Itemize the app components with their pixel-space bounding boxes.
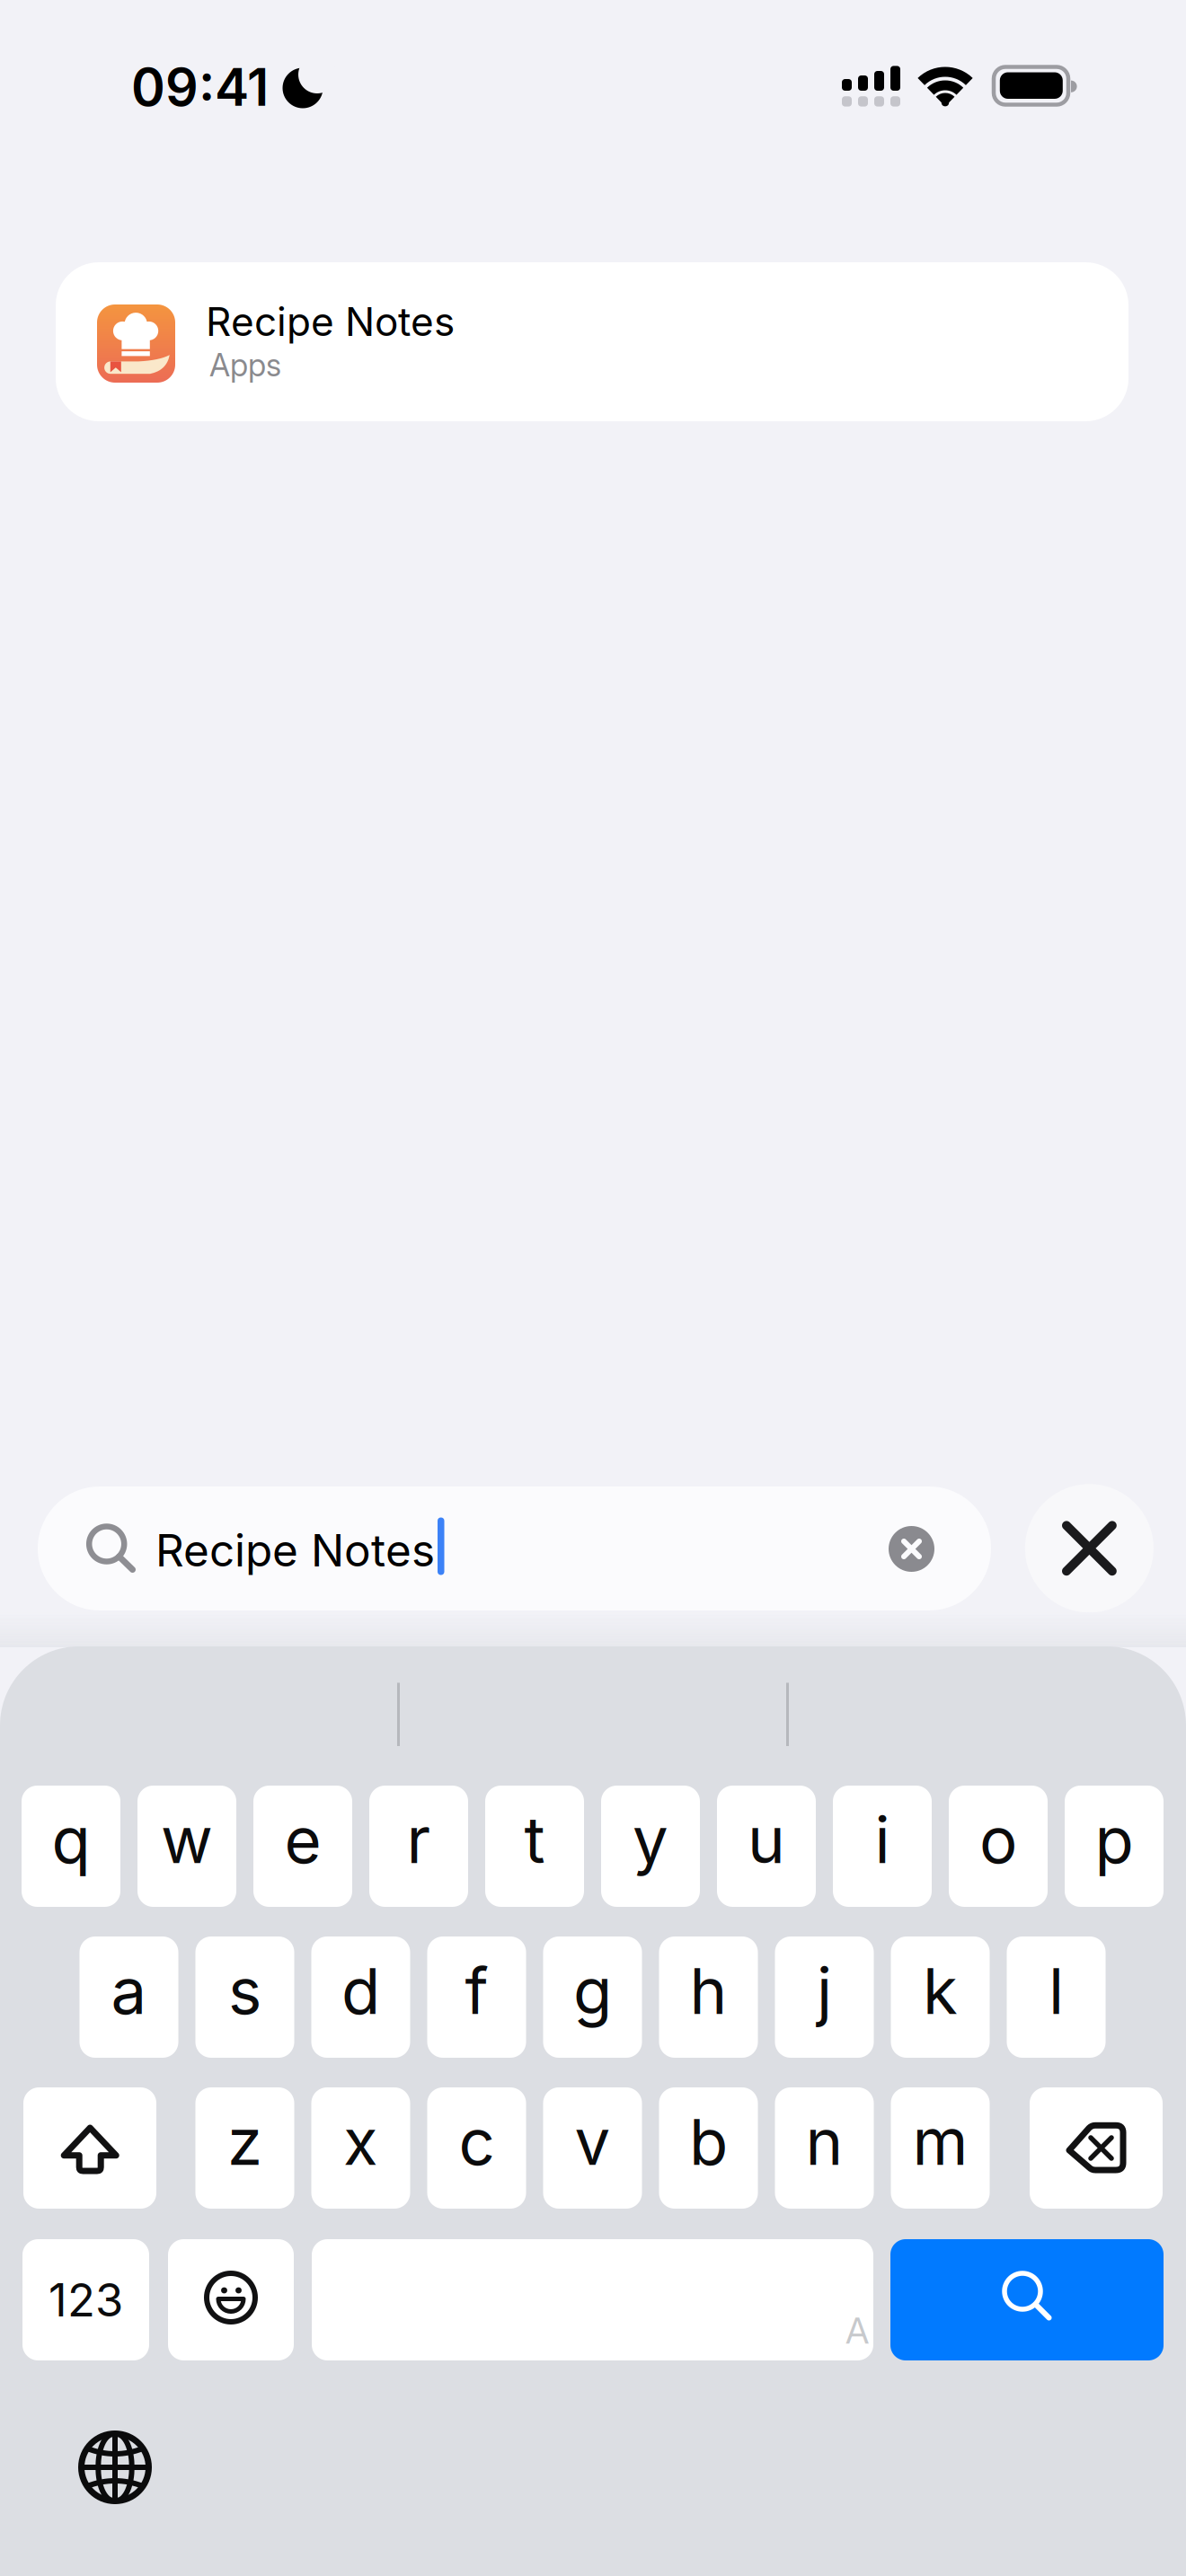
staticText: w <box>161 1802 213 1877</box>
staticText: e <box>284 1802 321 1877</box>
staticText: c <box>459 2104 495 2179</box>
button[interactable]: Search <box>890 2239 1164 2360</box>
staticText: b <box>689 2104 728 2179</box>
button[interactable]: Recipe Notes <box>0 0 1186 2576</box>
staticText: 09:41 <box>131 57 269 117</box>
button[interactable]: e <box>253 1786 352 1907</box>
button[interactable]: Clear text <box>889 1526 934 1572</box>
button[interactable]: w <box>137 1786 236 1907</box>
staticText: j <box>817 1953 832 2028</box>
staticText: n <box>805 2104 843 2179</box>
button[interactable]: t <box>485 1786 584 1907</box>
staticText: k <box>923 1953 958 2028</box>
staticText: r <box>407 1802 431 1877</box>
staticText: l <box>1049 1953 1064 2028</box>
button[interactable]: g <box>543 1936 642 2058</box>
staticText: q <box>52 1802 90 1877</box>
button[interactable]: d <box>311 1936 410 2058</box>
staticText: 123 <box>49 2273 123 2327</box>
staticText: a <box>111 1953 147 2028</box>
button[interactable]: c <box>427 2087 526 2209</box>
button[interactable]: a <box>80 1936 178 2058</box>
button[interactable]: m <box>891 2087 990 2209</box>
button[interactable]: h <box>659 1936 758 2058</box>
staticText: v <box>575 2104 611 2179</box>
staticText: h <box>690 1953 727 2028</box>
button[interactable]: o <box>949 1786 1048 1907</box>
staticText: Apps <box>209 347 281 383</box>
staticText: g <box>573 1953 612 2028</box>
button[interactable]: Emoji <box>168 2239 294 2360</box>
button[interactable]: f <box>427 1936 526 2058</box>
staticText: z <box>227 2104 262 2179</box>
button[interactable]: Cancel <box>0 0 1186 2576</box>
staticText: Recipe Notes <box>155 1524 435 1576</box>
staticText: y <box>633 1802 668 1877</box>
button[interactable]: y <box>601 1786 700 1907</box>
button[interactable]: Space <box>312 2239 873 2360</box>
button[interactable]: Delete <box>1030 2087 1163 2209</box>
button[interactable]: Next keyboard <box>78 2430 152 2504</box>
button[interactable]: k <box>891 1936 990 2058</box>
button[interactable]: 123 <box>22 2239 149 2360</box>
staticText: f <box>465 1953 488 2028</box>
button[interactable]: j <box>775 1936 874 2058</box>
button[interactable]: r <box>369 1786 468 1907</box>
staticText: s <box>228 1953 261 2028</box>
button[interactable]: v <box>543 2087 642 2209</box>
staticText: A <box>845 2309 869 2352</box>
button[interactable]: Shift <box>23 2087 156 2209</box>
button[interactable]: n <box>775 2087 874 2209</box>
staticText: p <box>1095 1802 1133 1877</box>
button[interactable]: q <box>22 1786 120 1907</box>
staticText: t <box>524 1802 545 1877</box>
staticText: d <box>341 1953 380 2028</box>
button[interactable]: i <box>833 1786 932 1907</box>
button[interactable]: b <box>659 2087 758 2209</box>
button[interactable]: Recipe Notes <box>0 0 1186 2576</box>
button[interactable]: p <box>1065 1786 1164 1907</box>
staticText: u <box>748 1802 785 1877</box>
button[interactable]: z <box>195 2087 294 2209</box>
staticText: o <box>979 1802 1017 1877</box>
staticText: i <box>875 1802 890 1877</box>
staticText: x <box>343 2104 378 2179</box>
staticText: Recipe Notes <box>206 298 455 345</box>
staticText: m <box>912 2104 968 2179</box>
button[interactable]: l <box>1007 1936 1106 2058</box>
button[interactable]: x <box>311 2087 410 2209</box>
button[interactable]: s <box>195 1936 294 2058</box>
button[interactable]: u <box>717 1786 816 1907</box>
